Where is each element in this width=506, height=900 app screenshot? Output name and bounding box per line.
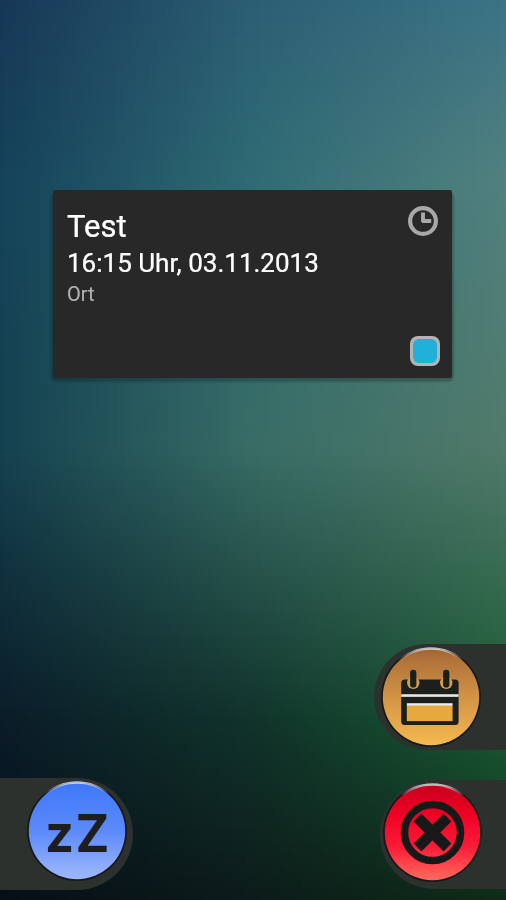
button[interactable]: Calendar [381,647,481,747]
button[interactable]: Dismiss [383,783,482,882]
button[interactable]: Snooze [27,781,127,881]
button[interactable]: Time [408,206,438,236]
staticText: Ort [67,282,95,305]
staticText: 16:15 Uhr, 03.11.2013 [67,248,319,278]
button[interactable]: Colour [413,339,437,363]
button[interactable]: Test [53,190,452,378]
staticText: Test [67,208,127,244]
staticText: zZ [46,803,112,865]
